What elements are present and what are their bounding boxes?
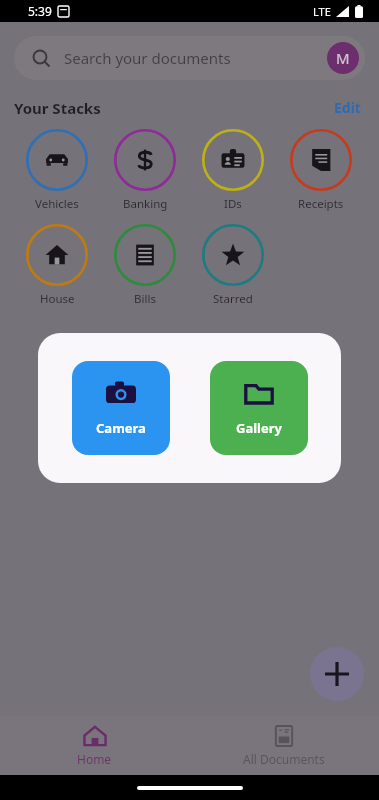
button[interactable]: Profile bbox=[327, 42, 359, 74]
staticText: IDs bbox=[224, 196, 242, 212]
staticText: All Documents bbox=[243, 751, 325, 767]
button[interactable]: All Documents bbox=[189, 716, 379, 775]
staticText: Starred bbox=[213, 291, 253, 307]
staticText: M bbox=[336, 48, 350, 68]
button[interactable]: Bills bbox=[101, 224, 189, 307]
staticText: Receipts bbox=[298, 196, 344, 212]
button[interactable]: Edit bbox=[330, 94, 365, 121]
staticText: Bills bbox=[134, 291, 156, 307]
button[interactable]: Banking bbox=[101, 129, 189, 212]
staticText: Vehicles bbox=[35, 196, 79, 212]
button[interactable]: Receipts bbox=[277, 129, 365, 212]
other: Search bbox=[32, 49, 51, 68]
button[interactable]: Add bbox=[310, 647, 364, 701]
button[interactable]: Home bbox=[0, 716, 189, 775]
staticText: Edit bbox=[334, 98, 361, 117]
button[interactable]: Starred bbox=[189, 224, 277, 307]
button[interactable]: House bbox=[13, 224, 101, 307]
staticText: House bbox=[40, 291, 75, 307]
staticText: 5:39 bbox=[28, 3, 52, 19]
staticText: LTE bbox=[313, 4, 331, 19]
staticText: Home bbox=[77, 751, 112, 767]
staticText: Your Stacks bbox=[14, 98, 101, 118]
staticText: Camera bbox=[96, 419, 146, 437]
button[interactable]: Vehicles bbox=[13, 129, 101, 212]
button[interactable]: Camera bbox=[72, 361, 170, 455]
button[interactable]: IDs bbox=[189, 129, 277, 212]
button[interactable]: Search bbox=[14, 36, 365, 80]
staticText: Search your documents bbox=[64, 48, 231, 68]
staticText: Gallery bbox=[236, 419, 282, 437]
button[interactable]: Gallery bbox=[210, 361, 308, 455]
staticText: Banking bbox=[123, 196, 168, 212]
